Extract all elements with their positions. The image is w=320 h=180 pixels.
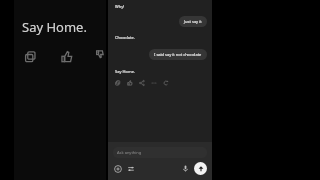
button[interactable]: Copy xyxy=(22,48,40,66)
button[interactable]: Thumb up xyxy=(126,79,134,87)
button[interactable]: Ask anything xyxy=(113,147,207,158)
button[interactable]: More xyxy=(150,79,158,87)
button[interactable]: Send xyxy=(194,162,207,175)
button[interactable]: Copy xyxy=(114,79,122,87)
button[interactable]: Refresh xyxy=(162,79,170,87)
button[interactable]: Add xyxy=(113,164,123,174)
staticText: Chocolate. xyxy=(115,35,135,40)
staticText: Just say it xyxy=(184,19,202,24)
button[interactable]: Thumb up xyxy=(58,48,76,66)
button[interactable]: Tools xyxy=(126,164,136,174)
staticText: Ask anything xyxy=(117,150,142,155)
staticText: I said say it not chocolate xyxy=(154,52,202,57)
staticText: Why! xyxy=(115,4,125,9)
button[interactable]: Thumb down xyxy=(94,48,106,66)
button[interactable]: Just say it xyxy=(179,16,207,27)
button[interactable]: Voice input xyxy=(181,164,190,173)
staticText: Say Home. xyxy=(115,69,135,74)
staticText: Say Home. xyxy=(22,18,87,36)
button[interactable]: Share xyxy=(138,79,146,87)
button[interactable]: I said say it not chocolate xyxy=(149,49,207,60)
